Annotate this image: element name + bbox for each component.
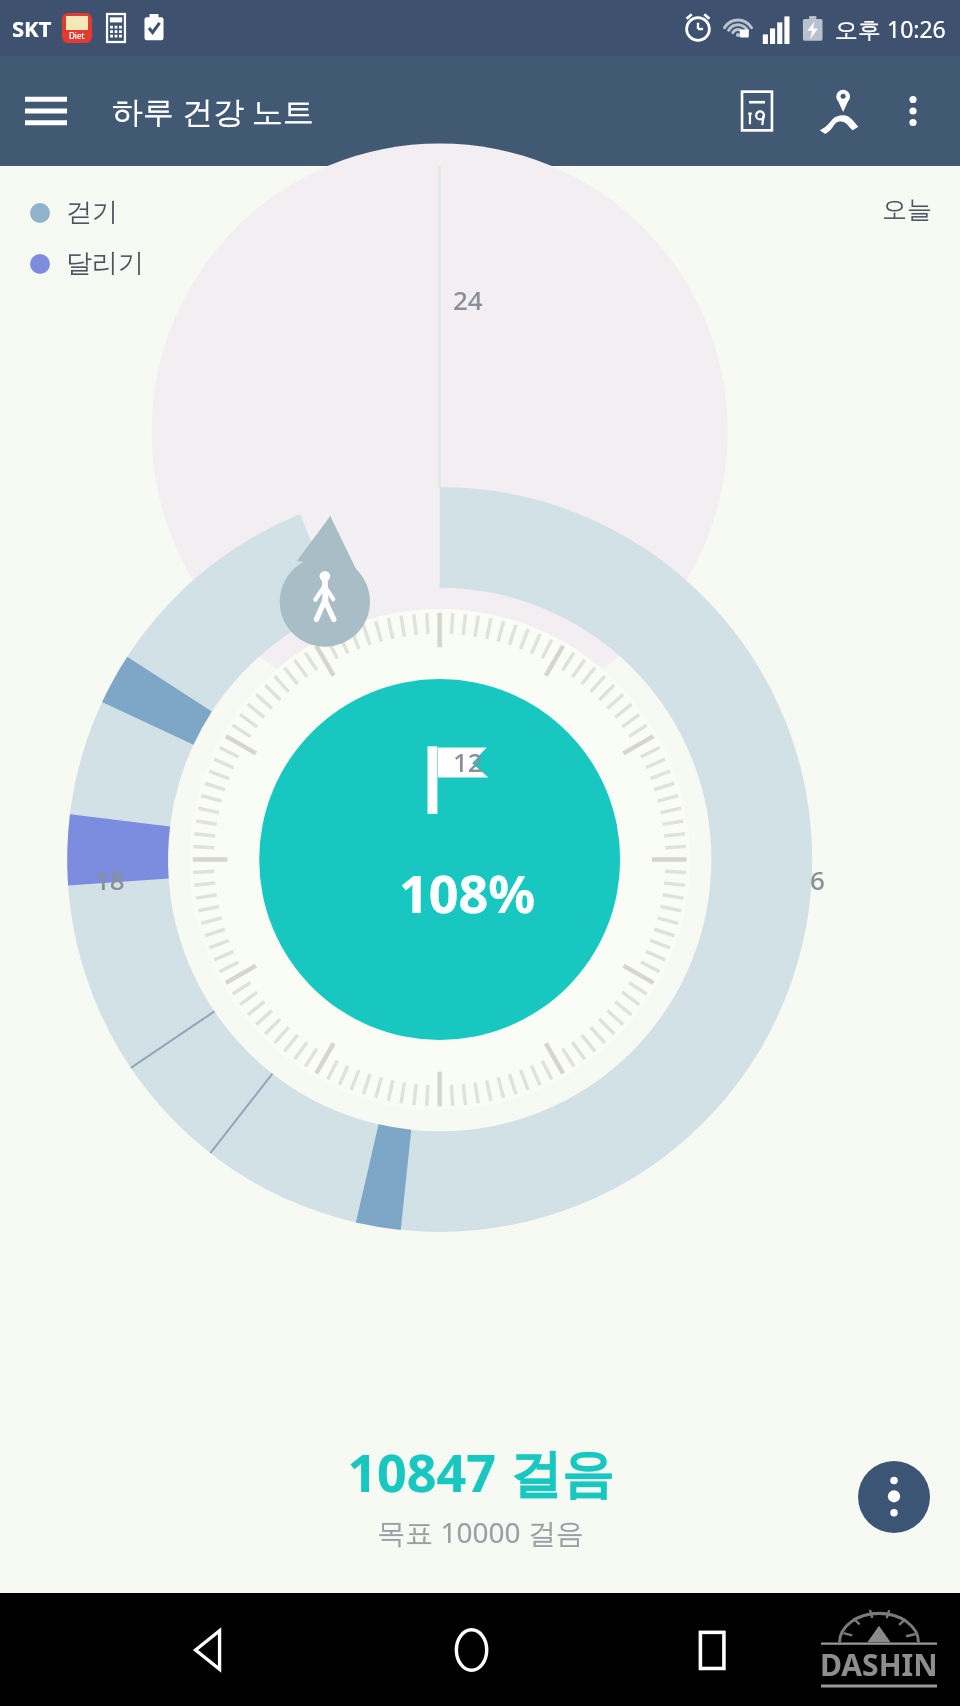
- staticText: 18: [95, 862, 125, 897]
- staticText: 10847 걸음: [347, 1436, 614, 1507]
- button[interactable]: More actions: [858, 1461, 930, 1533]
- staticText: 6: [810, 862, 825, 897]
- button[interactable]: Calendar: [726, 80, 788, 142]
- button[interactable]: More options: [884, 82, 942, 140]
- staticText: 12: [453, 744, 483, 779]
- staticText: Diet: [69, 30, 85, 41]
- staticText: 달리기: [66, 247, 144, 280]
- button[interactable]: 오늘: [882, 194, 932, 225]
- button[interactable]: Back: [172, 1613, 246, 1687]
- button[interactable]: 달리기: [30, 247, 144, 280]
- staticText: 하루 건강 노트: [112, 90, 315, 132]
- button[interactable]: Route: [808, 80, 870, 142]
- staticText: 24: [453, 282, 483, 317]
- button[interactable]: Home: [435, 1613, 509, 1687]
- button[interactable]: Menu: [18, 83, 74, 139]
- staticText: 걷기: [66, 196, 118, 229]
- button[interactable]: 걷기: [30, 196, 118, 229]
- staticText: SKT: [12, 13, 52, 43]
- staticText: DASHIN: [820, 1644, 938, 1685]
- staticText: 오후 10:26: [835, 13, 946, 44]
- staticText: 108%: [399, 857, 536, 928]
- button[interactable]: Recent apps: [676, 1613, 750, 1687]
- staticText: 목표 10000 걸음: [377, 1513, 584, 1551]
